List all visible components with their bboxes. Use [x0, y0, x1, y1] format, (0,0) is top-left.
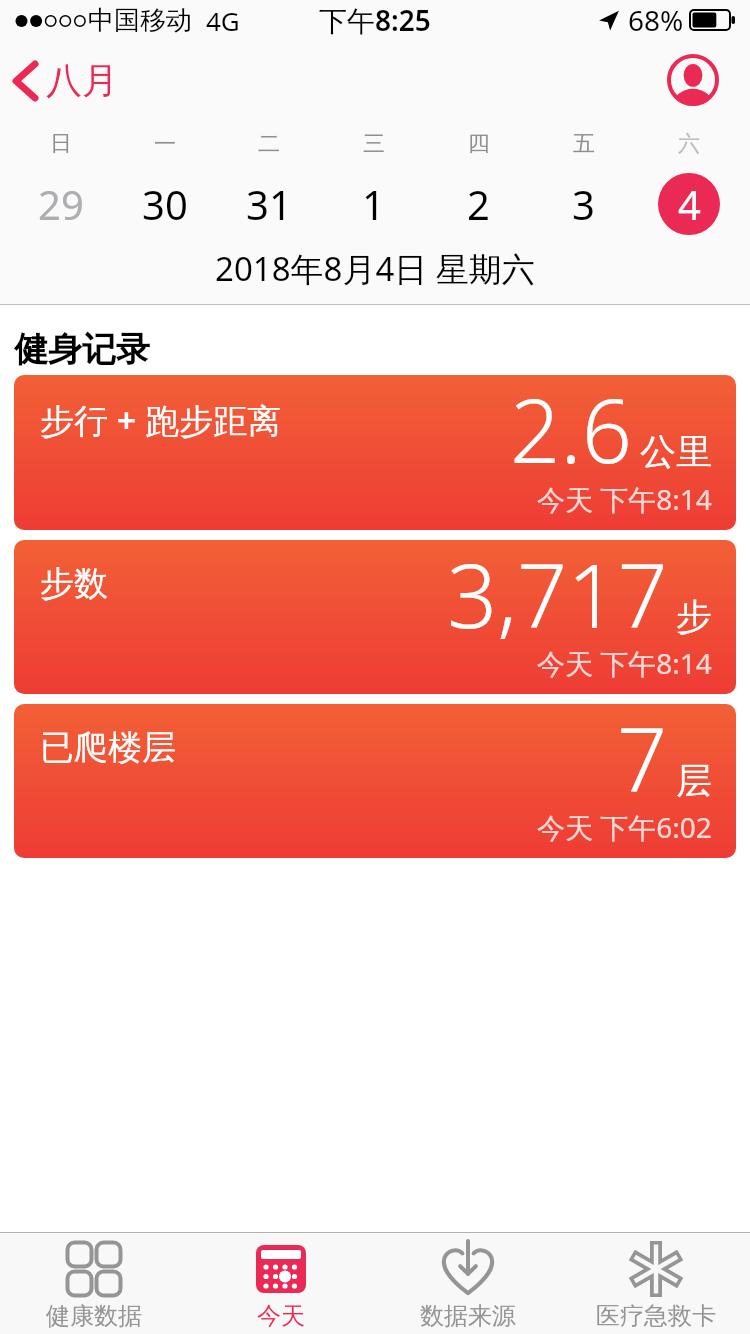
staticText: 四: [468, 130, 490, 158]
button[interactable]: 1: [321, 168, 426, 240]
staticText: 六: [678, 130, 700, 158]
button[interactable]: 已爬楼层: [14, 704, 736, 858]
staticText: 步行 + 跑步距离: [40, 397, 282, 443]
staticText: 日: [50, 130, 72, 158]
staticText: 医疗急救卡: [596, 1301, 716, 1331]
staticText: 今天 下午8:14: [537, 644, 712, 682]
staticText: 步数: [40, 562, 108, 605]
staticText: 健康数据: [46, 1301, 142, 1331]
staticText: 30: [142, 177, 188, 231]
button[interactable]: 八月: [12, 58, 118, 103]
button[interactable]: 31: [217, 168, 321, 240]
staticText: 层: [676, 758, 712, 803]
staticText: 7: [617, 704, 668, 818]
staticText: 五: [573, 130, 595, 158]
staticText: 一: [154, 130, 176, 158]
button[interactable]: 步行 + 跑步距离: [14, 375, 736, 530]
staticText: 31: [246, 177, 292, 231]
staticText: 68%: [628, 1, 684, 39]
button[interactable]: 步数: [14, 540, 736, 694]
staticText: 公里: [640, 429, 712, 474]
staticText: 中国移动: [88, 4, 192, 37]
button[interactable]: 2: [426, 168, 531, 240]
staticText: 2: [467, 177, 490, 231]
button[interactable]: 3: [531, 168, 636, 240]
staticText: 4: [678, 177, 701, 231]
staticText: 2018年8月4日 星期六: [215, 246, 535, 291]
staticText: 2.6: [510, 375, 632, 489]
staticText: 今天 下午6:02: [537, 808, 712, 846]
staticText: 八月: [46, 58, 118, 103]
staticText: 已爬楼层: [40, 726, 176, 769]
staticText: 步: [676, 594, 712, 639]
staticText: 二: [258, 130, 280, 158]
staticText: 健身记录: [14, 328, 150, 371]
button[interactable]: 29: [9, 168, 113, 240]
staticText: 今天: [257, 1301, 305, 1331]
staticText: 3: [572, 177, 595, 231]
staticText: 3,717: [447, 540, 668, 654]
staticText: 4G: [206, 3, 240, 38]
staticText: 29: [38, 177, 84, 231]
button[interactable]: 今天: [187, 1233, 374, 1334]
staticText: 1: [362, 177, 385, 231]
staticText: 今天 下午8:14: [537, 480, 712, 518]
button[interactable]: 数据来源: [374, 1233, 562, 1334]
button[interactable]: 医疗急救卡: [562, 1233, 750, 1334]
button[interactable]: 4: [636, 168, 741, 240]
button[interactable]: 30: [113, 168, 217, 240]
button[interactable]: 健康数据: [0, 1233, 187, 1334]
staticText: 下午8:25: [319, 1, 431, 39]
staticText: 数据来源: [420, 1301, 516, 1331]
button[interactable]: [667, 54, 719, 106]
staticText: 三: [363, 130, 385, 158]
